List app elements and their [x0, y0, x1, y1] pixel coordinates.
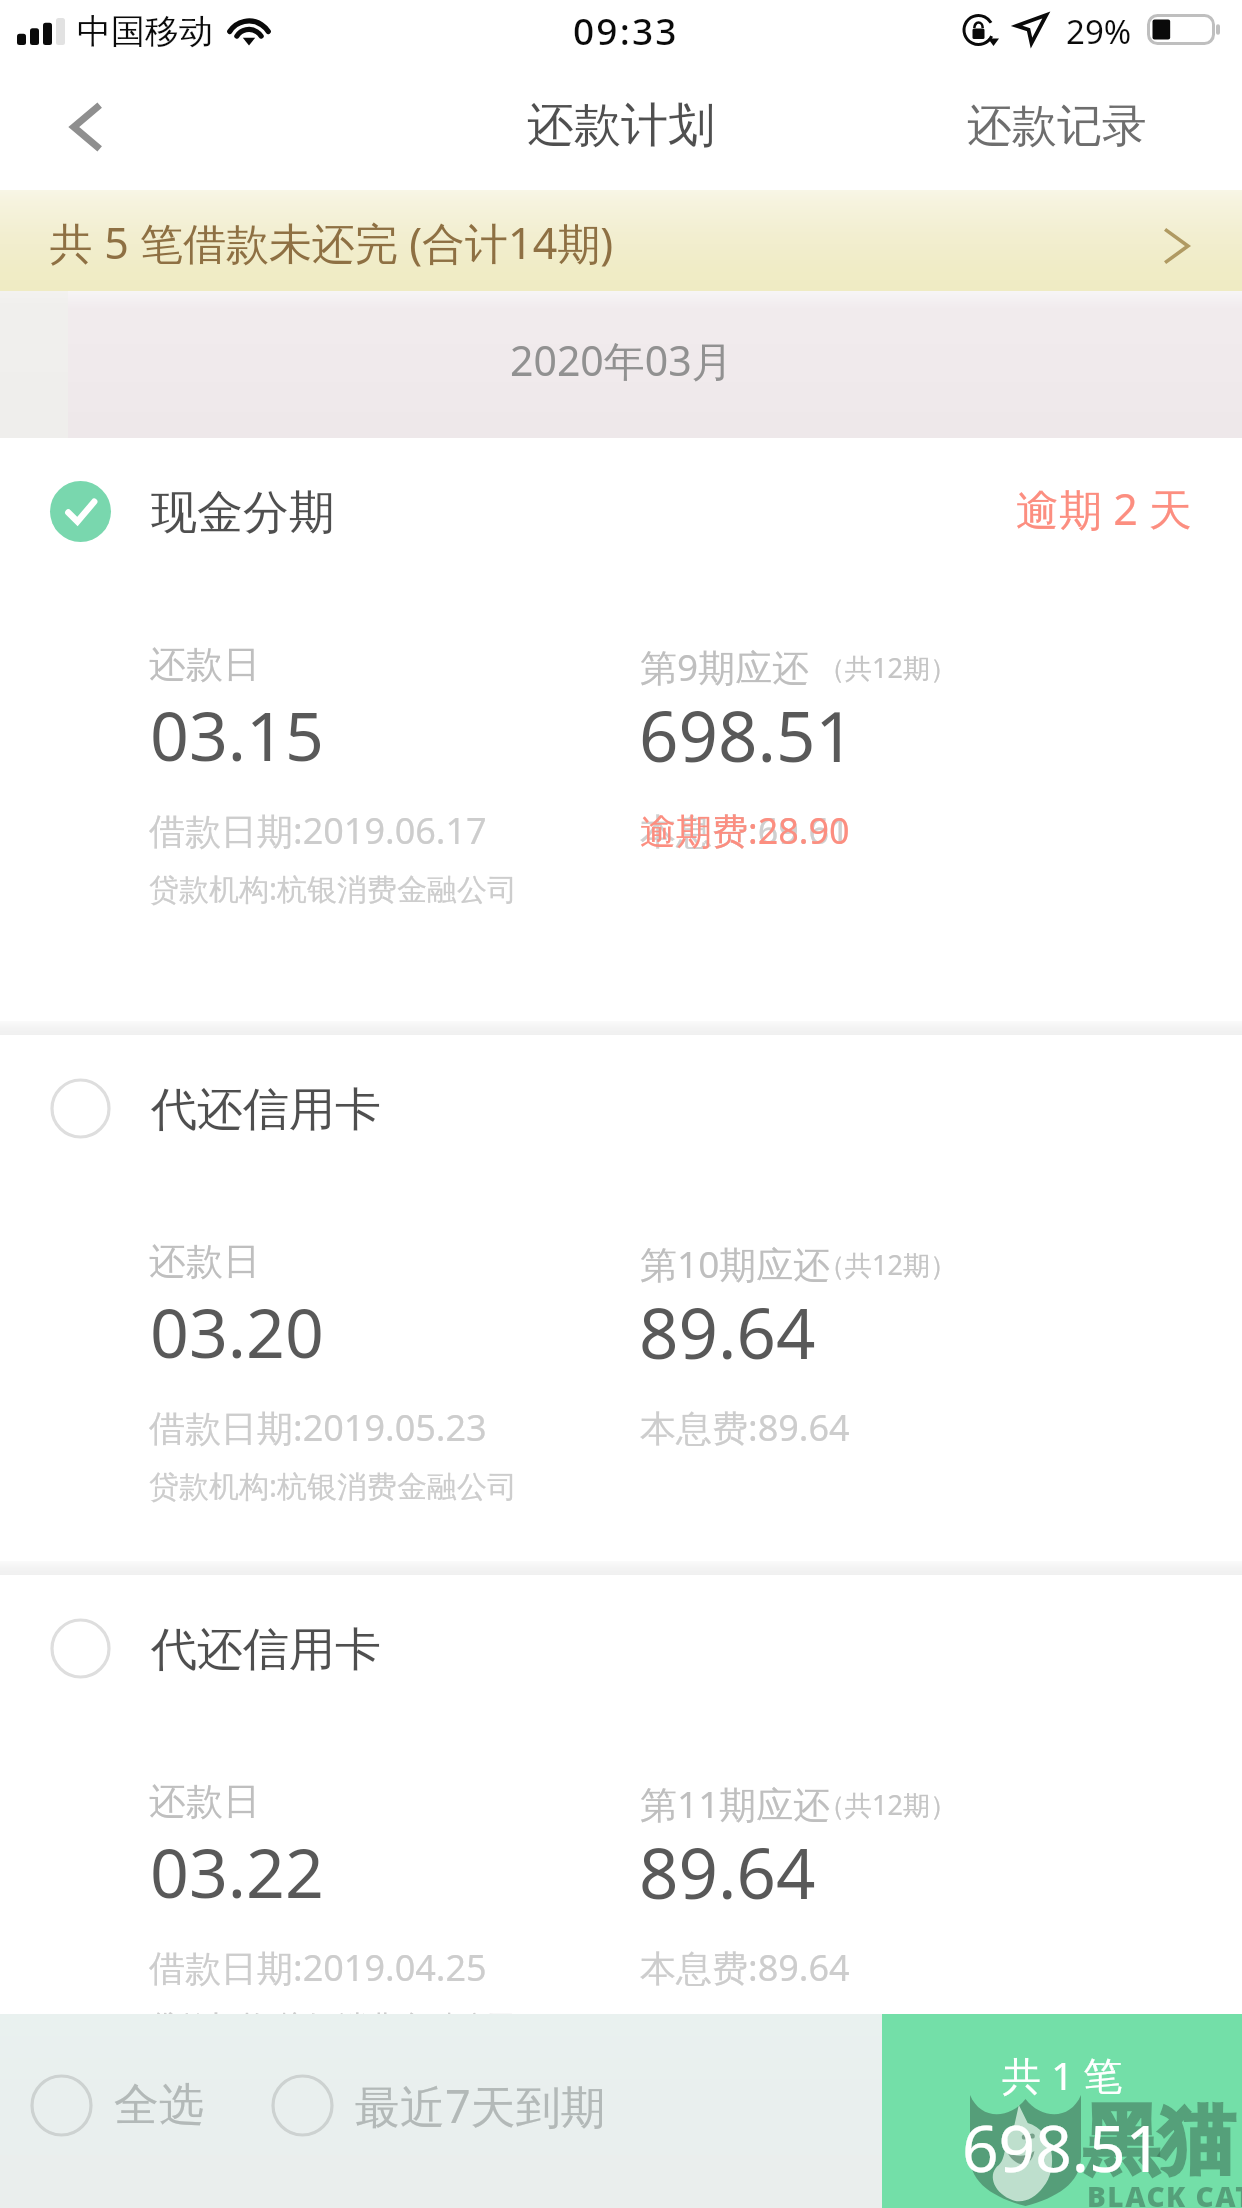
staticText: 借款日期:2019.04.25: [149, 1943, 487, 1992]
button[interactable]: Select: [0, 1575, 1242, 2208]
staticText: 最近7天到期: [355, 2075, 606, 2136]
button[interactable]: 共 5 笔借款未还完 (合计14期): [0, 190, 1242, 291]
staticText: 03.20: [150, 1285, 324, 1378]
staticText: 89.64: [639, 1285, 816, 1379]
staticText: 借款日期:2019.05.23: [149, 1403, 487, 1452]
staticText: 中国移动: [77, 10, 213, 53]
staticText: 本息费:89.64: [640, 1943, 850, 1992]
staticText: 现金分期: [151, 484, 335, 542]
button[interactable]: 最近7天到期: [271, 2074, 614, 2137]
staticText: 09:33: [573, 5, 679, 55]
staticText: 贷款机构:杭银消费金融公司: [149, 1465, 518, 1506]
button[interactable]: 黑猫: [882, 2014, 1242, 2208]
staticText: 本息费:69.61: [640, 806, 850, 855]
staticText: 第10期应还: [640, 1238, 831, 1289]
button[interactable]: 还款记录: [937, 62, 1242, 190]
staticText: 还款记录: [967, 98, 1147, 155]
button[interactable]: Select: [0, 1035, 1242, 1561]
staticText: 借款日期:2019.06.17: [149, 806, 487, 855]
staticText: 2020年03月: [510, 332, 733, 388]
button[interactable]: Back: [0, 62, 150, 190]
staticText: 逾期费:28.90: [640, 806, 850, 855]
button[interactable]: Select: [50, 1618, 111, 1679]
staticText: 03.15: [150, 688, 324, 781]
staticText: 第11期应还: [640, 1778, 831, 1829]
button[interactable]: Selected: [0, 438, 1242, 1021]
staticText: 还款日: [149, 1238, 260, 1285]
staticText: 698.51: [639, 688, 855, 782]
staticText: 还款日: [149, 1778, 260, 1825]
staticText: 本息费:89.64: [640, 1403, 850, 1452]
staticText: 29%: [1066, 9, 1132, 54]
staticText: 698.51: [962, 2104, 1163, 2191]
staticText: （共12期）: [818, 649, 957, 686]
button[interactable]: 全选: [30, 2074, 212, 2137]
staticText: 黑猫: [1083, 2093, 1235, 2189]
staticText: （共12期）: [818, 1246, 957, 1283]
staticText: 还款计划: [527, 96, 715, 155]
staticText: 逾期 2 天: [1016, 479, 1192, 538]
staticText: 贷款机构:杭银消费金融公司: [149, 868, 518, 909]
button[interactable]: Select: [50, 1078, 111, 1139]
staticText: 还款日: [149, 641, 260, 688]
staticText: 全选: [114, 2077, 204, 2134]
button[interactable]: Selected: [50, 481, 111, 542]
staticText: 共 1 笔: [1002, 2048, 1123, 2101]
staticText: （共12期）: [818, 1786, 957, 1823]
staticText: 第9期应还: [640, 641, 810, 692]
staticText: 代还信用卡: [151, 1621, 381, 1679]
staticText: 共 5 笔借款未还完 (合计14期): [50, 213, 614, 272]
staticText: 代还信用卡: [151, 1081, 381, 1139]
staticText: BLACK CAT: [1087, 2177, 1242, 2208]
staticText: 贷款机构:杭银消费金融公司: [149, 2005, 518, 2046]
staticText: 03.22: [150, 1825, 324, 1918]
other: Open loan summary: [1150, 220, 1202, 272]
staticText: 89.64: [639, 1825, 816, 1919]
